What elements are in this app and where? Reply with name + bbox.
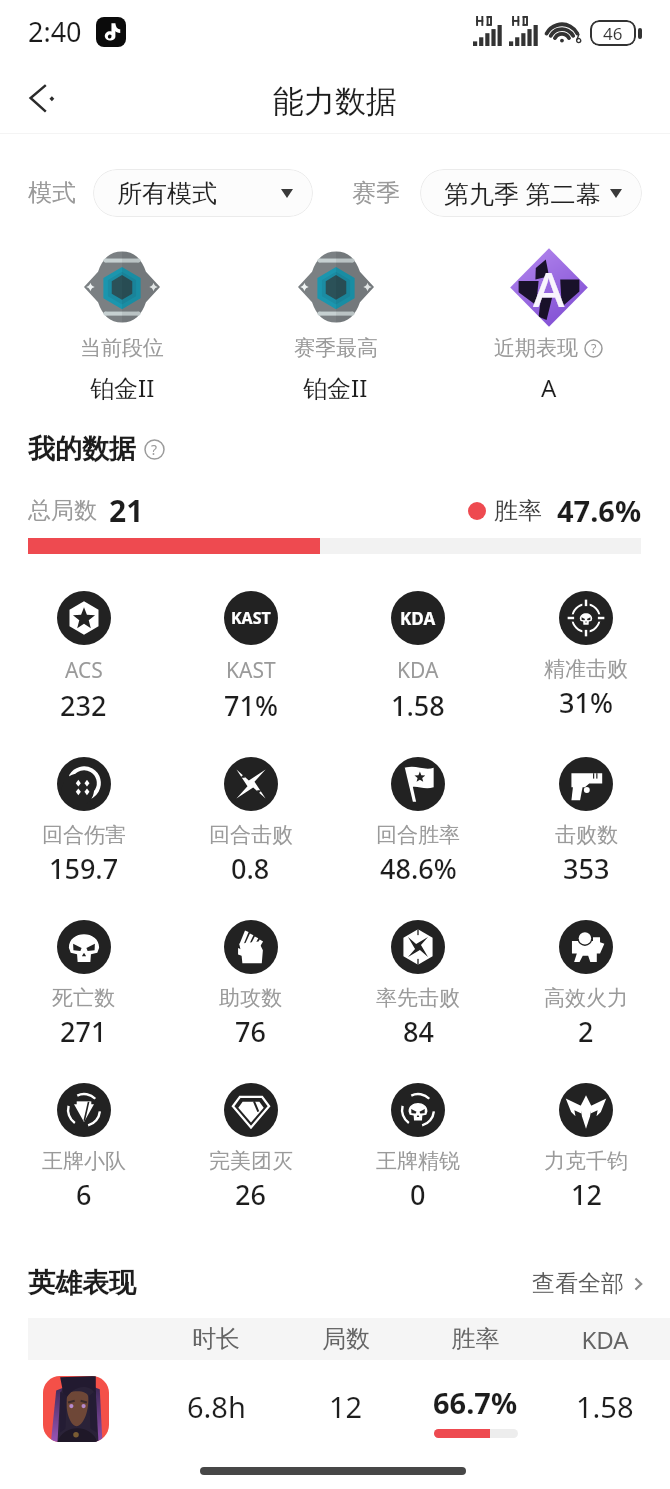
staticText: 回合胜率: [376, 822, 460, 848]
staticText: 84: [403, 1013, 434, 1050]
staticText: KDA: [540, 1323, 670, 1356]
staticText: 完美团灭: [209, 1148, 293, 1174]
staticText: 率先击败: [376, 985, 460, 1011]
staticText: 第九季 第二幕: [444, 176, 601, 210]
staticText: 王牌小队: [42, 1148, 126, 1174]
staticText: 76: [235, 1013, 266, 1050]
button[interactable]: 助攻数: [167, 920, 334, 1050]
staticText: 66.7%: [433, 1383, 518, 1422]
staticText: 12: [329, 1387, 363, 1426]
staticText: 48.6%: [380, 850, 457, 887]
staticText: 查看全部: [532, 1269, 624, 1298]
staticText: 铂金II: [303, 371, 368, 404]
staticText: 0.8: [231, 850, 270, 887]
staticText: 高效火力: [544, 985, 628, 1011]
staticText: 159.7: [49, 850, 119, 887]
staticText: 232: [60, 687, 107, 724]
staticText: 回合击败: [209, 822, 293, 848]
staticText: A: [541, 371, 557, 404]
button[interactable]: 回合胜率: [334, 757, 502, 887]
staticText: 英雄表现: [28, 1266, 136, 1300]
staticText: 回合伤害: [42, 822, 126, 848]
staticText: 47.6%: [557, 491, 642, 530]
staticText: 模式: [28, 178, 76, 208]
staticText: 46: [603, 22, 623, 45]
staticText: KDA: [400, 607, 436, 630]
staticText: 近期表现: [494, 335, 578, 361]
button[interactable]: 回合击败: [167, 757, 334, 887]
staticText: KAST: [231, 607, 271, 629]
button[interactable]: 率先击败: [334, 920, 502, 1050]
button[interactable]: 死亡数: [0, 920, 167, 1050]
staticText: 26: [235, 1176, 266, 1213]
staticText: 时长: [151, 1324, 281, 1354]
staticText: ?: [591, 340, 597, 357]
button[interactable]: 第九季 第二幕: [420, 169, 642, 217]
button[interactable]: KAST: [167, 591, 334, 724]
button[interactable]: 王牌精锐: [334, 1083, 502, 1213]
staticText: 当前段位: [80, 335, 164, 361]
staticText: 力克千钧: [544, 1148, 628, 1174]
staticText: 2: [578, 1013, 594, 1050]
button[interactable]: 高效火力: [502, 920, 670, 1050]
staticText: KAST: [226, 656, 276, 685]
staticText: 1.58: [391, 687, 445, 724]
staticText: ?: [151, 440, 158, 459]
staticText: 局数: [281, 1324, 411, 1354]
staticText: 21: [109, 490, 144, 531]
staticText: 我的数据: [28, 432, 136, 466]
button[interactable]: 力克千钧: [502, 1083, 670, 1213]
button[interactable]: 完美团灭: [167, 1083, 334, 1213]
staticText: 1.58: [576, 1387, 634, 1426]
button[interactable]: 击败数: [502, 757, 670, 887]
staticText: 0: [410, 1176, 426, 1213]
button[interactable]: 查看全部: [532, 1269, 646, 1298]
staticText: 死亡数: [52, 985, 115, 1011]
button[interactable]: 精准击败: [502, 591, 670, 721]
button[interactable]: Back: [16, 72, 68, 124]
staticText: 助攻数: [219, 985, 282, 1011]
button[interactable]: 赛季最高: [229, 243, 442, 404]
staticText: 胜率: [411, 1324, 540, 1354]
button[interactable]: 所有模式: [93, 169, 313, 217]
button[interactable]: A: [442, 243, 655, 404]
staticText: 所有模式: [117, 178, 217, 209]
staticText: 赛季最高: [294, 335, 378, 361]
staticText: 铂金II: [90, 371, 155, 404]
button[interactable]: 当前段位: [15, 243, 229, 404]
staticText: 6.8h: [187, 1387, 246, 1426]
staticText: 精准击败: [544, 656, 628, 682]
staticText: 12: [571, 1176, 602, 1213]
button[interactable]: 6.8h: [0, 1368, 670, 1450]
button[interactable]: 回合伤害: [0, 757, 167, 887]
staticText: 271: [60, 1013, 107, 1050]
staticText: 353: [563, 850, 610, 887]
staticText: 31%: [559, 684, 613, 721]
staticText: A: [533, 256, 565, 321]
staticText: ACS: [65, 656, 103, 685]
staticText: 击败数: [555, 822, 618, 848]
button[interactable]: KDA: [334, 591, 502, 724]
staticText: 王牌精锐: [376, 1148, 460, 1174]
staticText: 71%: [224, 687, 278, 724]
staticText: 能力数据: [273, 82, 397, 121]
staticText: 胜率: [494, 496, 542, 526]
button[interactable]: ACS: [0, 591, 167, 724]
staticText: 赛季: [352, 178, 400, 208]
staticText: 2:40: [28, 13, 82, 50]
staticText: 总局数: [28, 496, 97, 525]
staticText: KDA: [397, 656, 439, 685]
staticText: 6: [76, 1176, 92, 1213]
button[interactable]: 王牌小队: [0, 1083, 167, 1213]
